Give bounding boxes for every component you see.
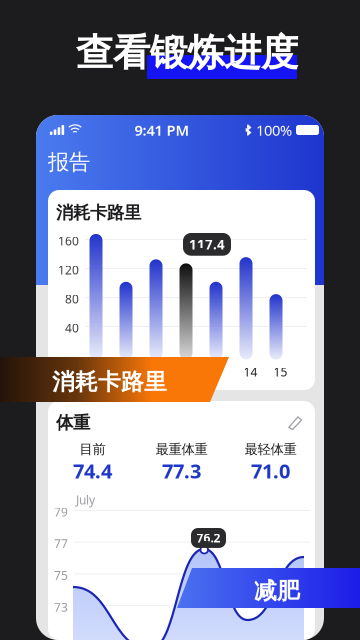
staticText: 79 [54,504,68,520]
staticText: 9:41 PM [134,120,189,140]
staticText: 71.0 [251,457,290,484]
staticText: 77 [54,536,68,552]
staticText: 查看锻炼进度 [76,30,298,76]
staticText: 75 [54,567,68,583]
staticText: 15 [273,364,287,380]
staticText: 报告 [48,149,90,175]
staticText: 117.4 [189,235,225,253]
staticText: 160 [58,233,79,249]
staticText: 100% [256,120,292,140]
staticText: 40 [65,320,79,336]
staticText: 14 [243,364,257,380]
staticText: 减肥 [254,577,300,605]
staticText: July [76,492,95,508]
staticText: 74.4 [73,457,112,484]
staticText: 76.2 [196,530,220,546]
button[interactable]: 减肥 [177,568,360,608]
staticText: 77.3 [162,457,201,484]
staticText: 73 [54,599,68,615]
button[interactable]: Edit weight [282,409,309,436]
staticText: 消耗卡路里 [56,202,141,223]
staticText: 最轻体重 [244,441,296,457]
staticText: 目前 [79,441,105,457]
button[interactable]: 报告 [36,145,102,179]
staticText: 120 [58,262,79,278]
button[interactable]: 消耗卡路里 [0,357,229,402]
staticText: 80 [65,291,79,307]
staticText: 体重 [56,412,90,433]
staticText: 最重体重 [155,441,207,457]
staticText: 消耗卡路里 [52,368,167,396]
